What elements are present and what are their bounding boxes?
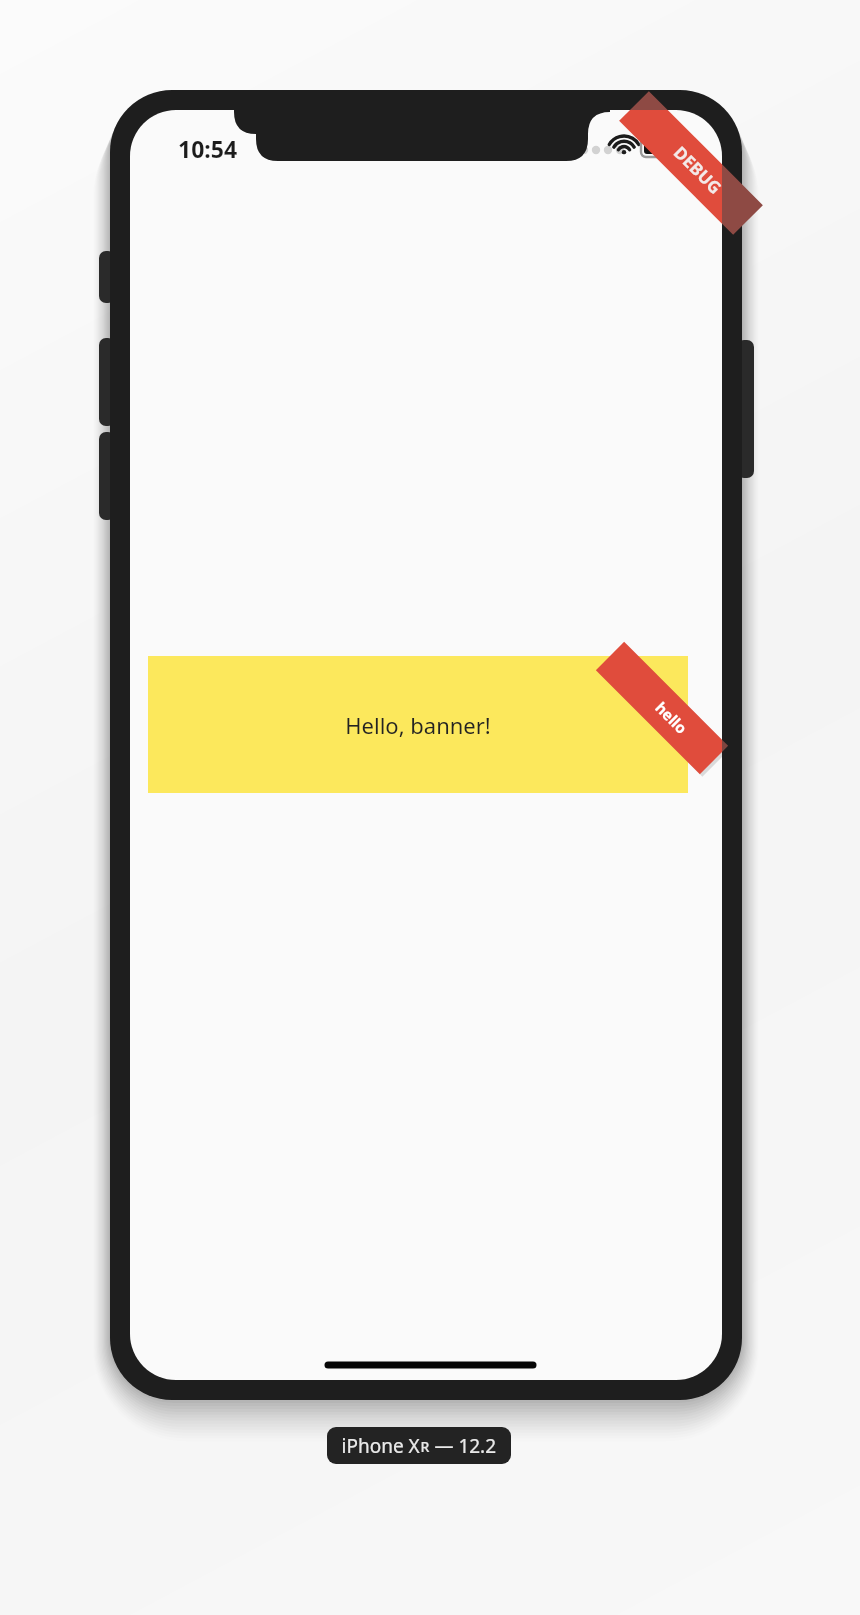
button[interactable]: Hello, banner! <box>148 656 688 793</box>
button[interactable] <box>327 1427 511 1464</box>
button[interactable]: Status: Wi-Fi and battery <box>616 130 688 168</box>
